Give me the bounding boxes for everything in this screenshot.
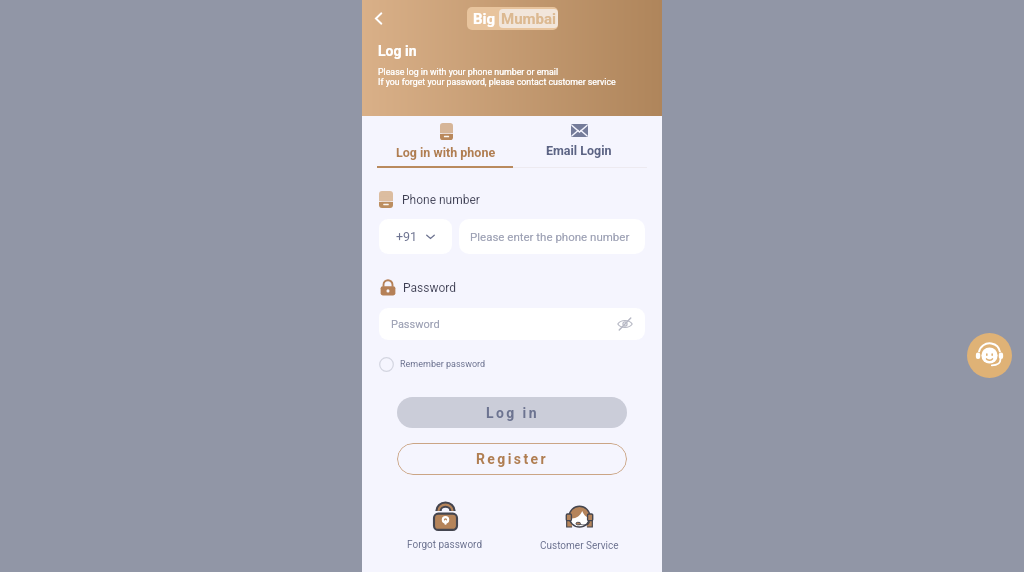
staticText: If you forget your password, please cont… xyxy=(378,77,616,87)
button[interactable]: Forgot password xyxy=(390,503,500,551)
staticText: Phone number xyxy=(402,193,480,207)
button[interactable]: Please enter the phone number xyxy=(459,219,645,254)
staticText: Log in xyxy=(486,405,539,421)
staticText: Please log in with your phone number or … xyxy=(378,67,559,77)
button[interactable]: Customer Service xyxy=(967,333,1012,378)
staticText: Remember password xyxy=(400,359,486,370)
button[interactable]: Register xyxy=(397,443,627,475)
staticText: Please enter the phone number xyxy=(470,230,630,243)
button[interactable]: +91 xyxy=(379,219,452,254)
staticText: Password xyxy=(403,281,457,295)
staticText: Log in with phone xyxy=(396,145,496,160)
button[interactable]: Email Login xyxy=(509,116,649,168)
staticText: Mumbai xyxy=(501,10,556,28)
button[interactable]: Customer Service xyxy=(524,503,634,552)
button[interactable]: Password xyxy=(379,308,645,340)
staticText: Password xyxy=(391,318,440,331)
button[interactable]: Back xyxy=(367,7,390,30)
staticText: Customer Service xyxy=(540,540,619,552)
staticText: Big xyxy=(473,10,496,28)
staticText: +91 xyxy=(396,229,418,244)
staticText: Forgot password xyxy=(407,539,483,551)
button[interactable]: Log in with phone xyxy=(376,116,516,168)
staticText: Log in xyxy=(378,43,417,59)
staticText: Email Login xyxy=(546,143,612,158)
button[interactable]: Remember password xyxy=(379,357,486,372)
button[interactable]: Log in xyxy=(397,397,627,428)
staticText: Register xyxy=(476,451,549,467)
button[interactable]: Show password xyxy=(617,316,633,332)
